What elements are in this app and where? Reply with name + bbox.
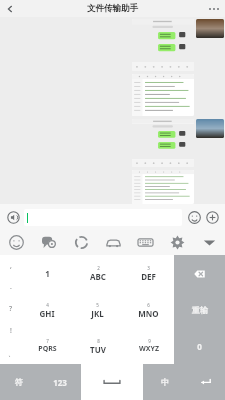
- button[interactable]: 中: [143, 364, 186, 400]
- staticText: 符: [15, 377, 23, 387]
- staticText: !: [10, 326, 12, 336]
- button[interactable]: 8: [72, 328, 123, 364]
- button[interactable]: Voice input: [4, 208, 22, 226]
- staticText: ,: [10, 261, 12, 271]
- button[interactable]: 符: [0, 364, 38, 400]
- staticText: 123: [53, 377, 67, 388]
- staticText: 、: [8, 349, 15, 358]
- button[interactable]: Back: [0, 0, 20, 17]
- button[interactable]: Enter: [186, 364, 225, 400]
- button[interactable]: 2: [72, 255, 123, 292]
- button[interactable]: [0, 19, 225, 71]
- button[interactable]: Hide keyboard: [193, 230, 225, 255]
- button[interactable]: Chat: [33, 230, 65, 255]
- button[interactable]: .: [0, 276, 22, 298]
- button[interactable]: 4: [22, 292, 72, 328]
- staticText: MNO: [138, 308, 159, 319]
- button[interactable]: 1: [22, 255, 72, 292]
- button[interactable]: 0: [174, 328, 225, 364]
- staticText: .: [10, 282, 12, 292]
- staticText: 9: [148, 338, 151, 344]
- staticText: ABC: [90, 271, 106, 282]
- staticText: GHI: [39, 308, 55, 319]
- staticText: 0: [197, 341, 202, 352]
- button[interactable]: Car mode: [97, 230, 129, 255]
- staticText: 文件传输助手: [87, 3, 138, 14]
- staticText: 4: [46, 302, 49, 308]
- staticText: JKL: [91, 308, 104, 319]
- button[interactable]: 6: [123, 292, 174, 328]
- button[interactable]: 5: [72, 292, 123, 328]
- staticText: ?: [9, 304, 13, 314]
- staticText: 重输: [192, 305, 208, 315]
- staticText: 1: [45, 268, 50, 279]
- button[interactable]: Settings: [161, 230, 193, 255]
- staticText: PQRS: [38, 344, 57, 354]
- button[interactable]: Emoji keyboard: [0, 230, 33, 255]
- button[interactable]: [0, 119, 225, 167]
- button[interactable]: [0, 170, 225, 204]
- button[interactable]: 123: [38, 364, 81, 400]
- staticText: 7: [46, 338, 49, 344]
- button[interactable]: 、: [0, 342, 22, 364]
- button[interactable]: ,: [0, 255, 22, 276]
- button[interactable]: 3: [123, 255, 174, 292]
- button[interactable]: Space: [81, 364, 143, 400]
- staticText: TUV: [90, 344, 106, 355]
- button[interactable]: Emoji: [185, 208, 203, 226]
- button[interactable]: [24, 209, 182, 226]
- staticText: 6: [147, 302, 150, 308]
- button[interactable]: ?: [0, 298, 22, 320]
- button[interactable]: 9: [123, 328, 174, 364]
- button[interactable]: !: [0, 320, 22, 342]
- button[interactable]: Backspace: [174, 255, 225, 292]
- staticText: 5: [96, 302, 99, 308]
- button[interactable]: Refresh: [65, 230, 97, 255]
- button[interactable]: More options: [203, 0, 225, 17]
- button[interactable]: 重输: [174, 292, 225, 328]
- button[interactable]: 7: [22, 328, 72, 364]
- button[interactable]: Keyboard: [129, 230, 161, 255]
- staticText: 3: [147, 265, 150, 271]
- staticText: 8: [97, 338, 100, 344]
- staticText: 2: [97, 265, 100, 271]
- button[interactable]: [0, 74, 225, 116]
- button[interactable]: More: [203, 208, 221, 226]
- staticText: DEF: [141, 271, 156, 282]
- staticText: WXYZ: [139, 344, 159, 354]
- staticText: 中: [161, 377, 169, 387]
